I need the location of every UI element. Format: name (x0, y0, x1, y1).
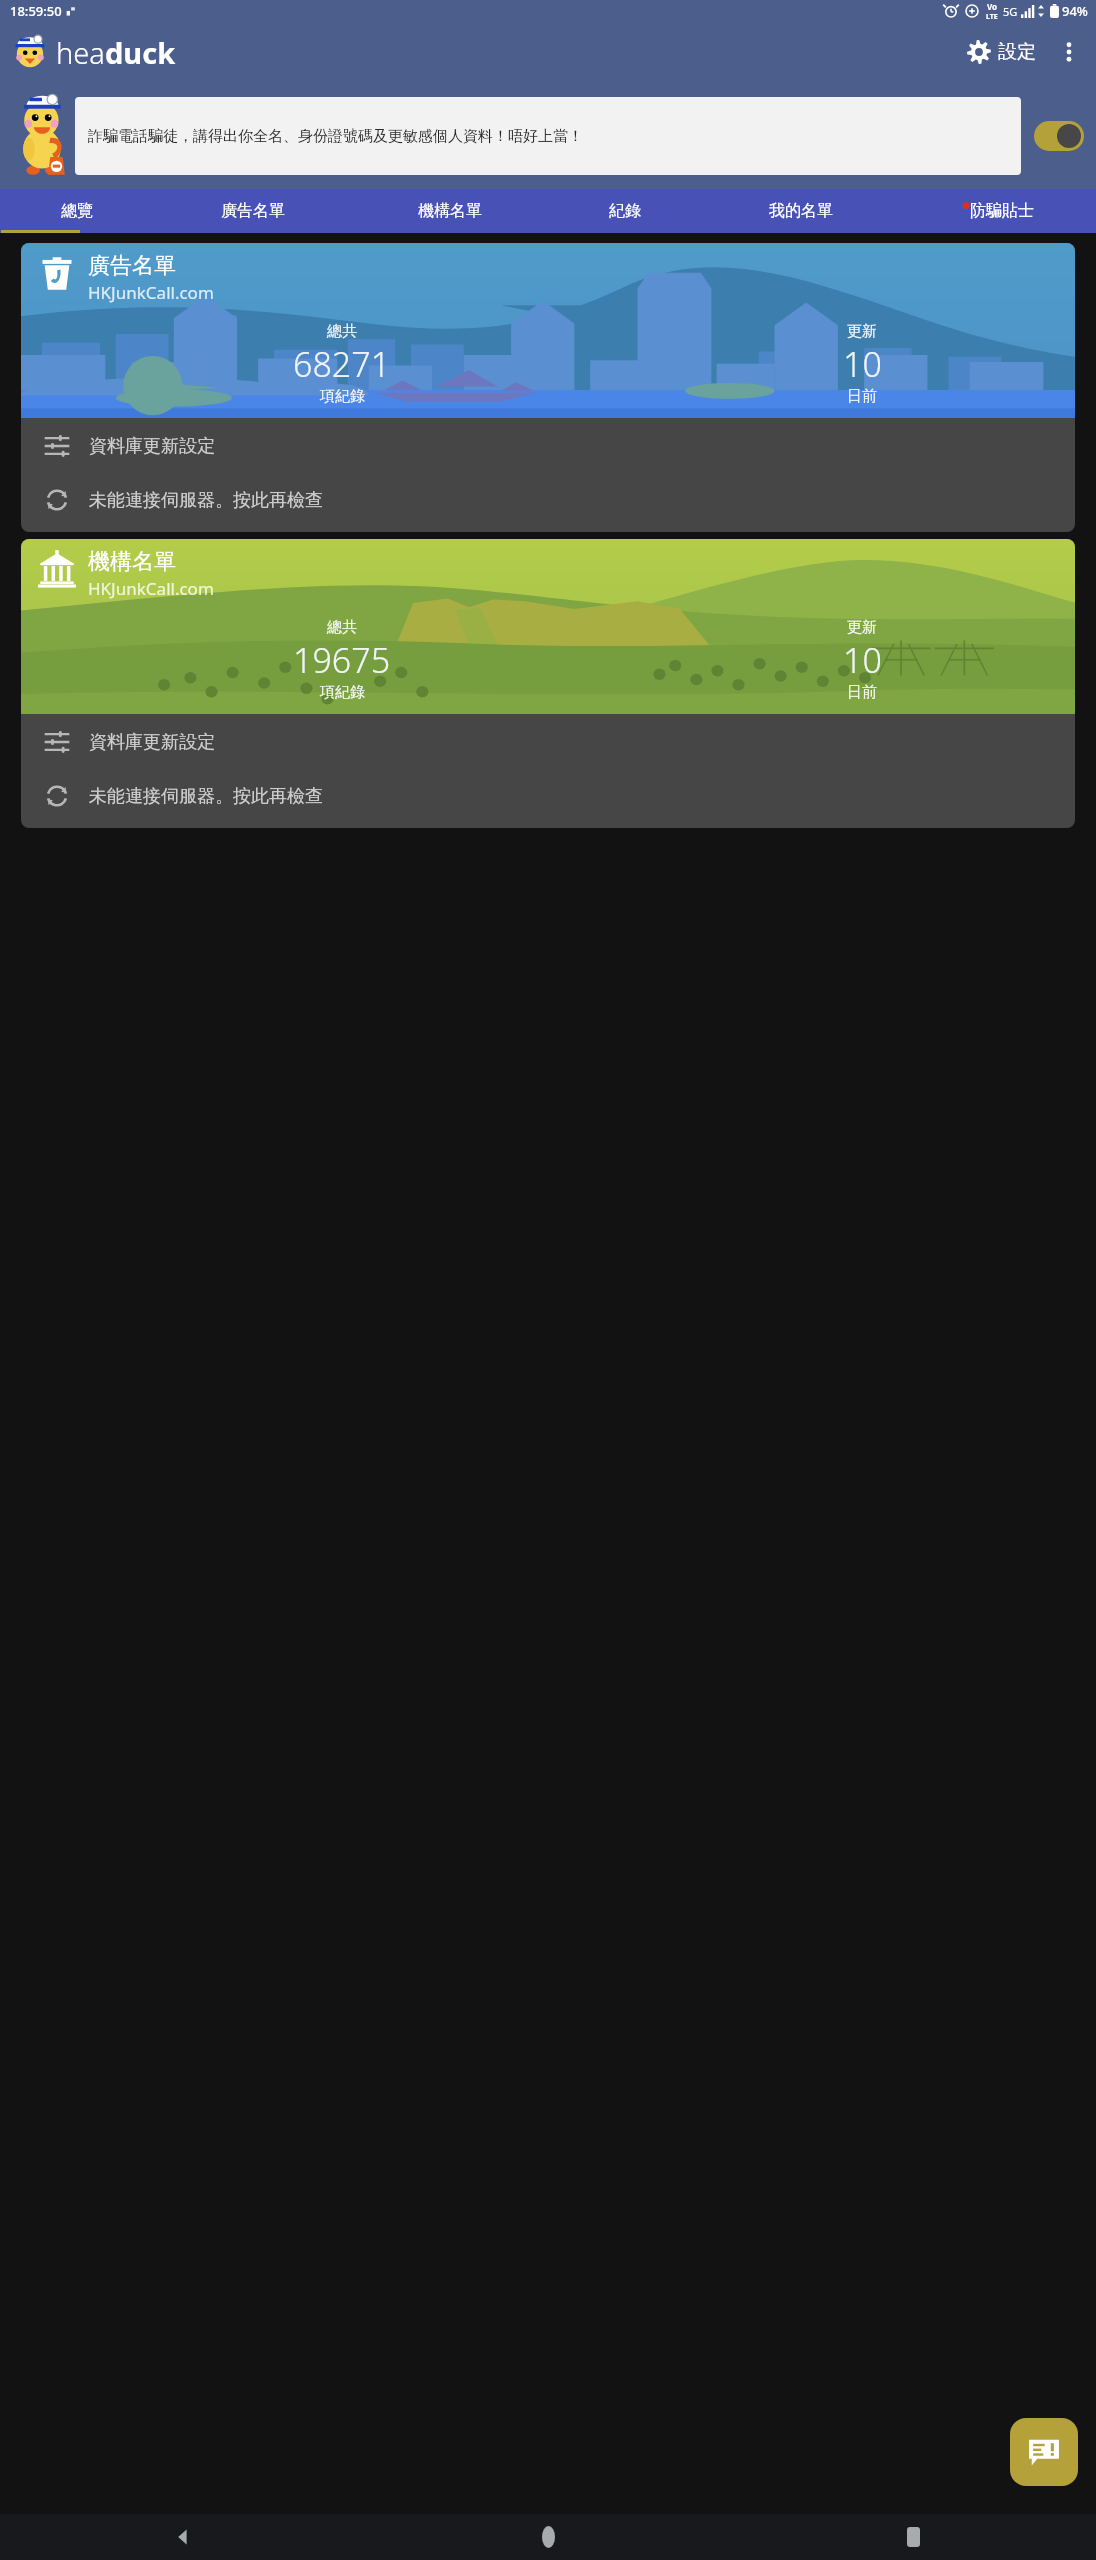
button[interactable]: Toggle tips (1034, 121, 1084, 151)
staticText: 廣告名單 (221, 201, 285, 221)
button[interactable]: 資料庫更新設定 (21, 418, 1075, 474)
button[interactable]: 詐騙電話騙徒，講得出你全名、身份證號碼及更敏感個人資料！唔好上當！ (75, 97, 1021, 175)
staticText: 詐騙電話騙徒，講得出你全名、身份證號碼及更敏感個人資料！唔好上當！ (88, 127, 583, 146)
staticText: 10 (843, 637, 882, 683)
staticText: 我的名單 (769, 201, 833, 221)
button[interactable]: Report junk call (1010, 2418, 1078, 2486)
staticText: 更新 (847, 618, 877, 637)
staticText: 19675 (293, 637, 391, 683)
staticText: 資料庫更新設定 (89, 435, 215, 458)
staticText: LTE (986, 12, 998, 22)
button[interactable]: 總覽 (0, 189, 154, 233)
staticText: 18:59:50 (10, 2, 62, 20)
staticText: HKJunkCall.com (88, 281, 214, 304)
button[interactable]: Home (524, 2514, 572, 2560)
button[interactable]: 未能連接伺服器。按此再檢查 (21, 770, 1075, 822)
button[interactable]: Back (159, 2514, 207, 2560)
staticText: duck (105, 33, 176, 72)
button[interactable]: 資料庫更新設定 (21, 714, 1075, 770)
staticText: 總覽 (61, 201, 93, 221)
button[interactable]: 未能連接伺服器。按此再檢查 (21, 474, 1075, 526)
button[interactable]: 機構名單 (21, 539, 1075, 714)
staticText: 10 (843, 341, 882, 387)
staticText: 項紀錄 (320, 683, 365, 702)
button[interactable]: 機構名單 (351, 189, 548, 233)
button[interactable]: 廣告名單 (21, 243, 1075, 418)
staticText: 總共 (327, 618, 357, 637)
staticText: 機構名單 (418, 201, 482, 221)
staticText: 項紀錄 (320, 387, 365, 406)
button[interactable]: 防騙貼士 (899, 189, 1096, 233)
staticText: 日前 (847, 387, 877, 406)
staticText: hea (56, 33, 105, 72)
button[interactable]: 我的名單 (702, 189, 899, 233)
staticText: 機構名單 (88, 548, 176, 576)
staticText: 設定 (998, 40, 1036, 64)
staticText: 防騙貼士 (970, 201, 1034, 221)
staticText: 5G (1003, 4, 1018, 19)
staticText: 資料庫更新設定 (89, 731, 215, 754)
staticText: 未能連接伺服器。按此再檢查 (89, 489, 323, 512)
staticText: 紀錄 (609, 201, 641, 221)
staticText: 94% (1062, 2, 1088, 20)
staticText: 日前 (847, 683, 877, 702)
staticText: 未能連接伺服器。按此再檢查 (89, 785, 323, 808)
staticText: HKJunkCall.com (88, 577, 214, 600)
staticText: Vo (987, 1, 998, 12)
button[interactable]: 紀錄 (548, 189, 702, 233)
staticText: 總共 (327, 322, 357, 341)
button[interactable]: Recent apps (889, 2514, 937, 2560)
button[interactable]: 設定 (960, 33, 1042, 71)
button[interactable]: More options (1052, 35, 1086, 69)
staticText: 廣告名單 (88, 252, 176, 280)
staticText: 更新 (847, 322, 877, 341)
button[interactable]: 廣告名單 (154, 189, 351, 233)
staticText: 68271 (293, 341, 391, 387)
